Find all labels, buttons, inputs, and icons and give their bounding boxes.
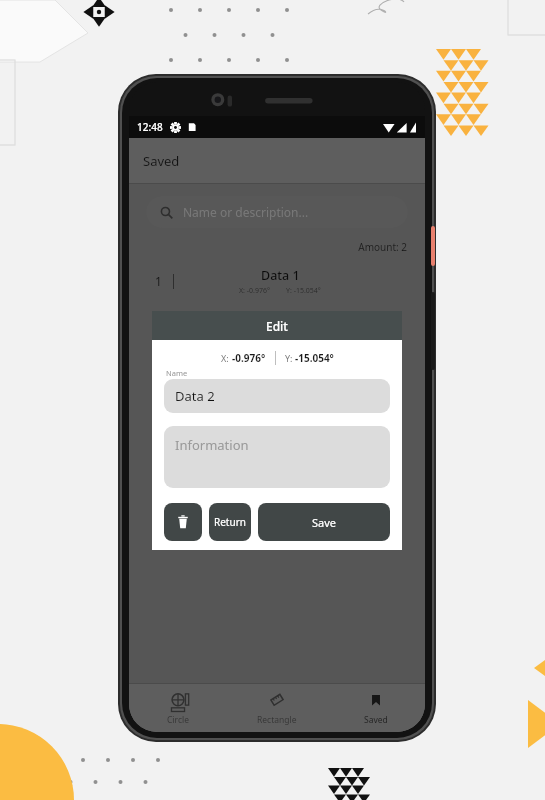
button[interactable]: Circle [129,684,227,732]
staticText: -15.054° [295,351,334,365]
button[interactable]: Save [258,503,390,541]
staticText: Circle [167,714,189,726]
staticText: Edit [266,318,288,334]
staticText: X: -0.976° [239,332,270,342]
staticText: 1 [155,273,162,289]
staticText: Y: -15.054° [286,286,321,296]
staticText: Y: [285,352,295,364]
staticText: Data 2 [175,387,215,405]
button[interactable]: Information [164,426,390,488]
staticText: -0.976° [232,351,266,365]
button[interactable]: 1 [142,262,412,300]
staticText: X: [221,352,232,364]
staticText: Amount: 2 [129,240,407,254]
staticText: Save [312,515,337,530]
staticText: Information [175,436,249,454]
button[interactable]: Name or description... [146,196,408,228]
staticText: Return [214,515,246,529]
button[interactable]: Data 2 [164,379,390,413]
staticText: Saved [143,152,180,170]
staticText: Name or description... [183,204,309,220]
staticText: Y: -15.054° [286,332,321,342]
button[interactable]: Rectangle [227,684,326,732]
staticText: Name [166,368,188,378]
button[interactable]: Saved [326,684,425,732]
staticText: Data 2 [261,313,300,330]
staticText: 12:48 [137,120,163,134]
button[interactable]: 2 [142,308,412,346]
staticText: Saved [364,714,388,726]
button[interactable]: Delete [164,503,202,541]
button[interactable]: Return [209,503,251,541]
staticText: Data 1 [261,267,300,284]
staticText: Rectangle [257,714,297,726]
staticText: X: -0.976° [239,286,270,296]
